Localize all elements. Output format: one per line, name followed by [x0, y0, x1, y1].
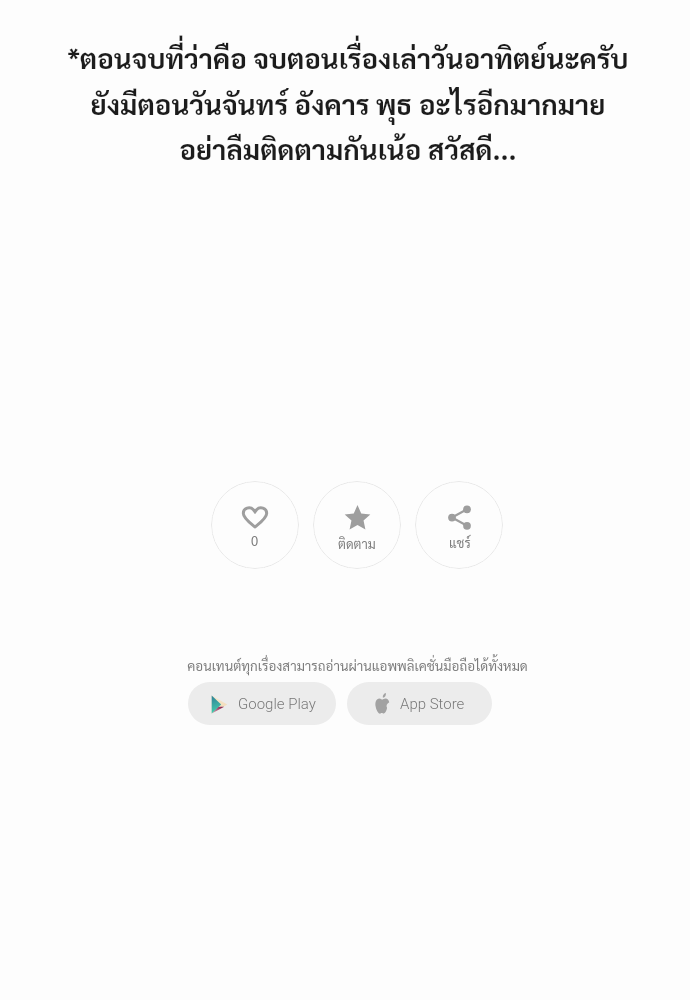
- staticText: คอนเทนต์ทุกเรื่องสามารถอ่านผ่านแอพพลิเคช…: [187, 657, 528, 674]
- button[interactable]: Like: [211, 481, 299, 569]
- staticText: แชร์: [449, 534, 471, 551]
- button[interactable]: Follow: [313, 481, 401, 569]
- button[interactable]: App Store: [347, 682, 492, 725]
- staticText: App Store: [400, 695, 465, 713]
- staticText: *ตอนจบที่ว่าคือ จบตอนเรื่องเล่าวันอาทิตย…: [67, 40, 629, 166]
- button[interactable]: Google Play: [188, 682, 336, 725]
- button[interactable]: Share: [415, 481, 503, 569]
- staticText: Google Play: [238, 695, 316, 713]
- staticText: 0: [251, 532, 259, 549]
- staticText: ติดตาม: [338, 535, 376, 552]
